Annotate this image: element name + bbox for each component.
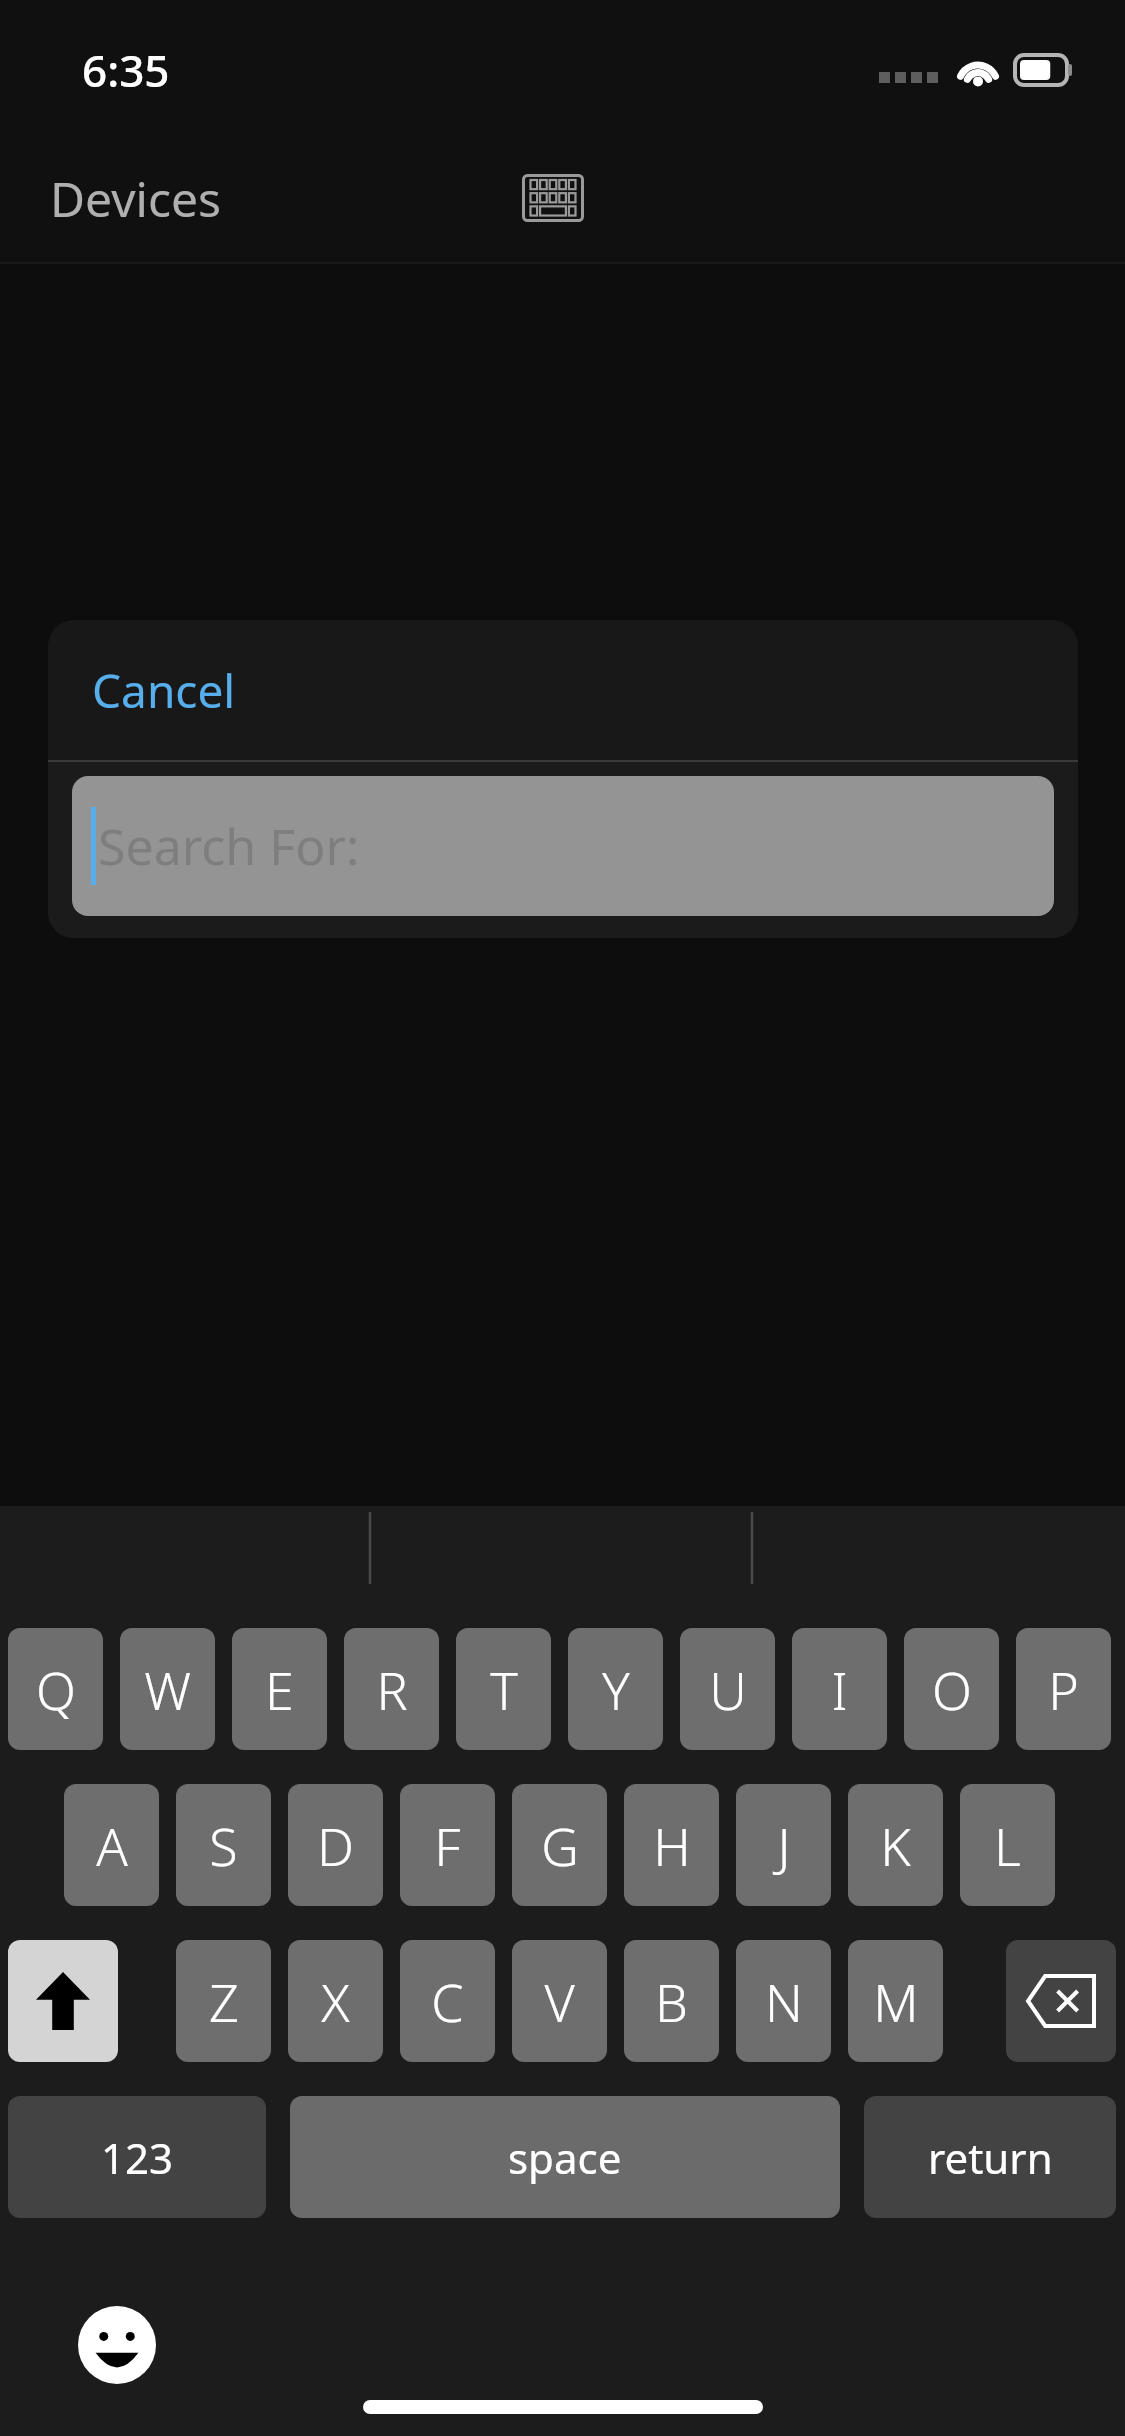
staticText: A: [96, 1810, 128, 1881]
button[interactable]: V: [512, 1940, 607, 2062]
button[interactable]: 123: [8, 2096, 266, 2218]
staticText: U: [709, 1654, 747, 1725]
button[interactable]: B: [624, 1940, 719, 2062]
button[interactable]: Search For:: [72, 776, 1054, 916]
staticText: Cancel: [92, 659, 236, 722]
button[interactable]: I: [792, 1628, 887, 1750]
staticText: M: [873, 1966, 919, 2037]
staticText: Search For:: [98, 812, 360, 880]
button[interactable]: X: [288, 1940, 383, 2062]
staticText: F: [434, 1810, 461, 1881]
staticText: I: [831, 1654, 848, 1725]
staticText: J: [777, 1810, 791, 1881]
button[interactable]: Emoji: [68, 2296, 166, 2394]
button[interactable]: Cancel: [68, 641, 260, 740]
button[interactable]: Y: [568, 1628, 663, 1750]
staticText: O: [932, 1654, 972, 1725]
button[interactable]: L: [960, 1784, 1055, 1906]
staticText: N: [765, 1966, 803, 2037]
button[interactable]: H: [624, 1784, 719, 1906]
button[interactable]: P: [1016, 1628, 1111, 1750]
staticText: G: [541, 1810, 579, 1881]
button[interactable]: return: [864, 2096, 1116, 2218]
staticText: return: [928, 2129, 1053, 2186]
button[interactable]: J: [736, 1784, 831, 1906]
button[interactable]: E: [232, 1628, 327, 1750]
staticText: 6:35: [82, 40, 170, 100]
staticText: W: [144, 1654, 191, 1725]
button[interactable]: space: [290, 2096, 840, 2218]
button[interactable]: Shift: [8, 1940, 118, 2062]
staticText: 123: [101, 2129, 174, 2186]
staticText: L: [994, 1810, 1021, 1881]
button[interactable]: G: [512, 1784, 607, 1906]
staticText: space: [508, 2129, 622, 2186]
staticText: S: [209, 1810, 238, 1881]
button[interactable]: A: [64, 1784, 159, 1906]
staticText: Z: [209, 1966, 239, 2037]
staticText: C: [431, 1966, 464, 2037]
button[interactable]: U: [680, 1628, 775, 1750]
button[interactable]: T: [456, 1628, 551, 1750]
button[interactable]: W: [120, 1628, 215, 1750]
button[interactable]: K: [848, 1784, 943, 1906]
staticText: K: [880, 1810, 911, 1881]
staticText: H: [653, 1810, 691, 1881]
staticText: Devices: [50, 166, 222, 231]
staticText: D: [317, 1810, 354, 1881]
staticText: B: [655, 1966, 688, 2037]
button[interactable]: C: [400, 1940, 495, 2062]
button[interactable]: F: [400, 1784, 495, 1906]
button[interactable]: Backspace: [1006, 1940, 1116, 2062]
button[interactable]: D: [288, 1784, 383, 1906]
staticText: Q: [36, 1654, 76, 1725]
button[interactable]: O: [904, 1628, 999, 1750]
button[interactable]: S: [176, 1784, 271, 1906]
button[interactable]: Z: [176, 1940, 271, 2062]
staticText: E: [265, 1654, 294, 1725]
staticText: R: [376, 1654, 408, 1725]
staticText: P: [1048, 1654, 1079, 1725]
button[interactable]: N: [736, 1940, 831, 2062]
button[interactable]: Keyboard: [498, 150, 608, 246]
button[interactable]: Q: [8, 1628, 103, 1750]
button[interactable]: M: [848, 1940, 943, 2062]
button[interactable]: Devices: [30, 154, 242, 243]
staticText: V: [544, 1966, 575, 2037]
staticText: Y: [602, 1654, 630, 1725]
button[interactable]: R: [344, 1628, 439, 1750]
staticText: X: [321, 1966, 350, 2037]
staticText: T: [490, 1654, 518, 1725]
